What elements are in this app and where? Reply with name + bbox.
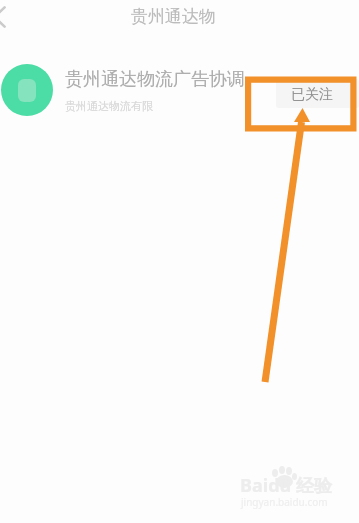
- staticText: 贵州通达物: [131, 6, 216, 27]
- button[interactable]: 已关注: [276, 79, 359, 108]
- staticText: 已关注: [291, 86, 333, 104]
- staticText: 贵州通达物流广告协调: [65, 68, 245, 91]
- button[interactable]: 贵州通达物流广告协调: [0, 62, 359, 118]
- staticText: Baidu 经验: [240, 473, 332, 498]
- button[interactable]: Back: [0, 5, 7, 29]
- staticText: 贵州通达物流有限: [65, 99, 153, 113]
- staticText: jingyan.baidu.com: [241, 495, 328, 509]
